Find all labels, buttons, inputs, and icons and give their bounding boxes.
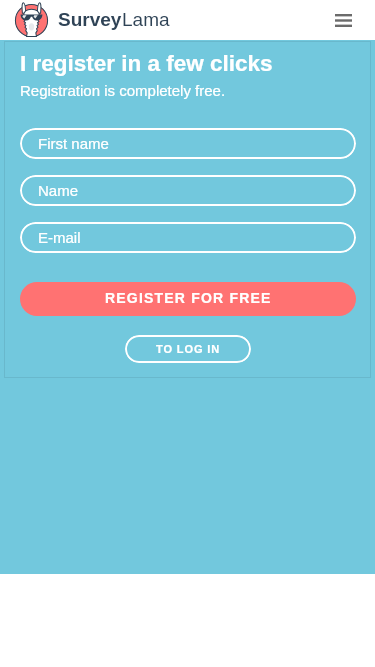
staticText: Survey xyxy=(58,9,122,30)
button[interactable]: Name xyxy=(20,175,356,206)
staticText: I register in a few clicks xyxy=(20,51,273,76)
button[interactable]: TO LOG IN xyxy=(125,335,251,363)
staticText: Lama xyxy=(122,9,170,30)
button[interactable]: Open menu xyxy=(324,1,362,39)
button[interactable]: E-mail xyxy=(20,222,356,253)
staticText: First name xyxy=(38,135,109,152)
staticText: REGISTER FOR FREE xyxy=(105,290,272,306)
staticText: Name xyxy=(38,182,79,199)
staticText: Registration is completely free. xyxy=(20,82,226,99)
button[interactable]: First name xyxy=(20,128,356,159)
button[interactable]: REGISTER FOR FREE xyxy=(20,282,356,316)
button[interactable]: Survey xyxy=(0,0,170,40)
staticText: E-mail xyxy=(38,229,81,246)
staticText: TO LOG IN xyxy=(156,343,221,355)
